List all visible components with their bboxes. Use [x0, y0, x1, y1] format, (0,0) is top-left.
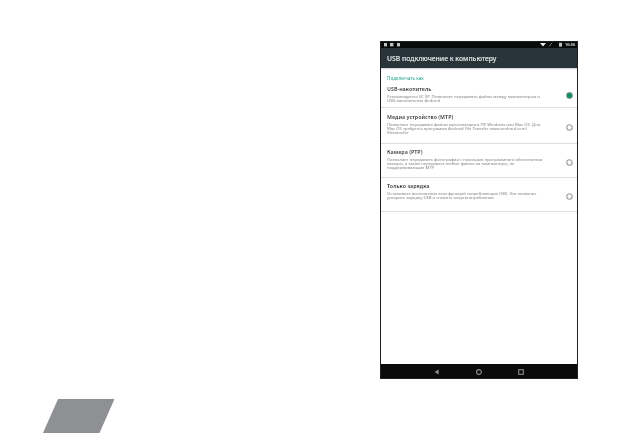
button[interactable] — [425, 364, 449, 379]
staticText: Рекомендуется SC XP. Позволяет передават… — [387, 94, 540, 104]
staticText: Камера (PTP) — [387, 148, 423, 155]
staticText: Остановите выполнение всех функций потре… — [387, 191, 537, 201]
staticText: USB-накопитель — [387, 85, 432, 92]
staticText: Медиа устройство (MTP) — [387, 113, 454, 120]
button[interactable]: USB подключение к компьютеру — [380, 48, 578, 68]
button[interactable] — [467, 364, 491, 379]
staticText: 16:56 — [565, 42, 576, 47]
staticText: Позволяет передавать файлы мультимедиа в… — [387, 122, 541, 136]
button[interactable] — [509, 364, 533, 379]
staticText: Подключать как — [387, 75, 424, 81]
button[interactable]: Камера (PTP) — [380, 144, 578, 177]
staticText: USB подключение к компьютеру — [387, 54, 497, 63]
staticText: Только зарядка — [387, 182, 430, 189]
button[interactable]: Только зарядка — [380, 178, 578, 211]
button[interactable]: USB-накопитель — [380, 84, 578, 107]
staticText: Позволяет передавать фотографии с помощь… — [387, 157, 543, 171]
button[interactable]: Медиа устройство (MTP) — [380, 108, 578, 143]
